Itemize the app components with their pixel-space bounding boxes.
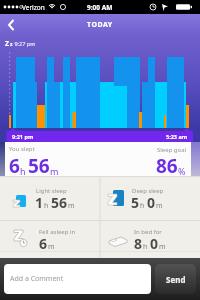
button[interactable]: Send: [155, 264, 196, 294]
staticText: Z: [5, 39, 10, 49]
staticText: h: [20, 165, 28, 177]
staticText: Sleep goal: [157, 146, 187, 154]
staticText: m: [68, 201, 75, 211]
staticText: 6: [39, 234, 48, 253]
staticText: 5:23 am: [166, 133, 188, 140]
staticText: h: [140, 201, 147, 211]
staticText: Deep sleep: [132, 187, 164, 195]
staticText: 1: [35, 193, 44, 212]
button[interactable]: Add a Comment: [4, 264, 151, 294]
staticText: 56: [28, 153, 50, 179]
staticText: h: [143, 242, 150, 252]
staticText: TODAY: [87, 20, 113, 30]
button[interactable]: In bed for: [100, 220, 200, 258]
staticText: In bed for: [134, 228, 162, 236]
staticText: h: [44, 201, 51, 211]
staticText: 5: [131, 193, 140, 212]
staticText: 86: [156, 153, 178, 179]
staticText: You slept: [9, 145, 35, 153]
staticText: 56: [51, 193, 68, 212]
staticText: 9:00 AM: [87, 3, 113, 12]
button[interactable]: Deep sleep: [100, 176, 200, 220]
staticText: Send: [166, 274, 186, 285]
button[interactable]: Light sleep: [0, 176, 100, 220]
staticText: z: [10, 41, 13, 48]
staticText: Fell asleep in: [39, 228, 76, 236]
staticText: m: [159, 242, 166, 252]
staticText: 0: [150, 234, 159, 253]
staticText: Add a Comment: [10, 274, 64, 284]
staticText: 9:21 pm: [12, 133, 34, 140]
staticText: 8: [134, 234, 143, 253]
staticText: 0: [147, 193, 156, 212]
staticText: Verizon: [22, 3, 45, 12]
staticText: Light sleep: [36, 187, 67, 195]
staticText: 6: [9, 153, 20, 179]
staticText: m: [156, 201, 163, 211]
staticText: m: [50, 165, 59, 177]
staticText: m: [48, 242, 55, 252]
staticText: %: [178, 165, 186, 177]
button[interactable]: Fell asleep in: [0, 220, 100, 258]
staticText: 9:27 pm: [13, 40, 36, 47]
button[interactable]: [4, 14, 18, 36]
